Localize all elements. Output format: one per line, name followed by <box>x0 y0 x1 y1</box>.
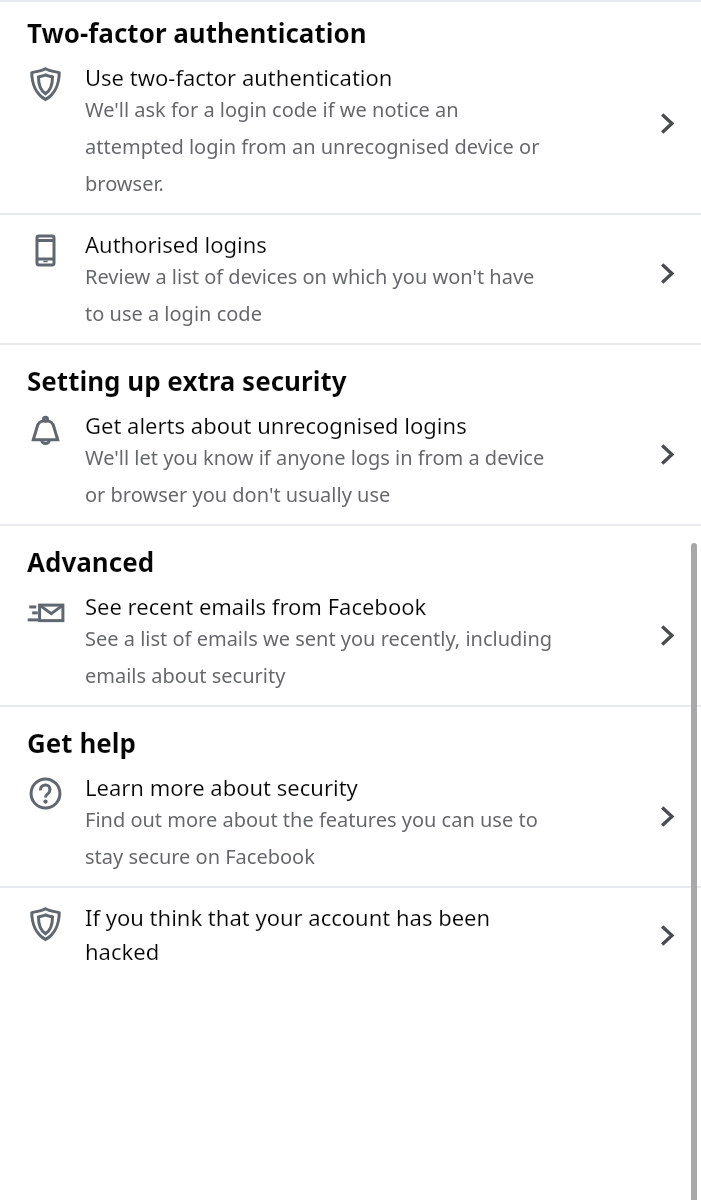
other: Shield <box>27 905 64 942</box>
other: Phone <box>27 232 64 269</box>
other: Notifications <box>27 413 64 450</box>
button[interactable]: Shield <box>0 888 701 986</box>
staticText: Use two-factor authentication <box>85 62 393 92</box>
staticText: Learn more about security <box>85 772 358 802</box>
button[interactable]: Email <box>0 583 701 705</box>
staticText: Review a list of devices on which you wo… <box>85 263 535 327</box>
staticText: We'll let you know if anyone logs in fro… <box>85 444 545 508</box>
staticText: Advanced <box>27 544 155 579</box>
button[interactable]: Phone <box>0 215 701 343</box>
button[interactable]: Shield <box>0 54 701 213</box>
staticText: See a list of emails we sent you recentl… <box>85 625 553 689</box>
button[interactable]: Notifications <box>0 402 701 524</box>
other: Email <box>27 594 64 631</box>
other: Shield <box>27 65 64 102</box>
staticText: Find out more about the features you can… <box>85 806 538 870</box>
staticText: See recent emails from Facebook <box>85 591 427 621</box>
button[interactable]: Help <box>0 764 701 886</box>
staticText: Authorised logins <box>85 229 267 259</box>
staticText: If you think that your account has been … <box>85 902 491 966</box>
staticText: Two-factor authentication <box>27 15 367 50</box>
staticText: Get help <box>27 725 136 760</box>
staticText: Get alerts about unrecognised logins <box>85 410 467 440</box>
staticText: We'll ask for a login code if we notice … <box>85 96 540 197</box>
staticText: Setting up extra security <box>27 363 347 398</box>
other: Help <box>27 775 64 812</box>
